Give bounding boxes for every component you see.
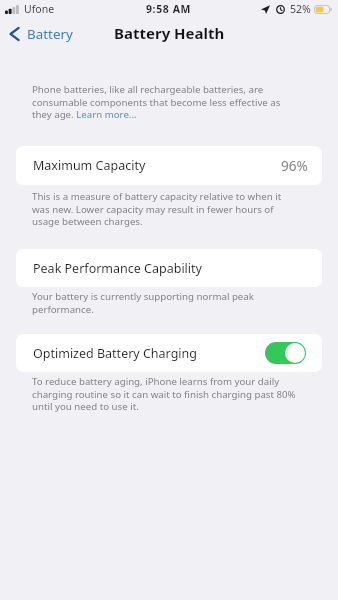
staticText: 9:58 AM [146, 2, 192, 16]
other: Alarm set [276, 5, 285, 14]
staticText: Peak Performance Capability [33, 260, 202, 277]
staticText: 96% [281, 156, 308, 175]
staticText: Battery [27, 25, 73, 43]
staticText: Ufone [24, 2, 55, 16]
other: Battery 52 percent, low power mode [314, 5, 332, 14]
staticText: Your battery is currently supporting nor… [32, 290, 298, 315]
staticText: Optimized Battery Charging [33, 345, 197, 362]
other: Location services active [261, 5, 270, 14]
button[interactable]: Optimized Battery Charging, on [265, 342, 306, 364]
staticText: 52% [290, 2, 311, 16]
button[interactable]: Peak Performance Capability [16, 249, 322, 287]
staticText: Phone batteries, like all rechargeable b… [32, 83, 298, 120]
staticText: Maximum Capacity [33, 157, 146, 174]
staticText: To reduce battery aging, iPhone learns f… [32, 375, 298, 412]
button[interactable]: Optimized Battery Charging [16, 334, 322, 372]
button[interactable]: Maximum Capacity [16, 146, 322, 185]
other: Cellular signal strength [5, 5, 20, 14]
staticText: This is a measure of battery capacity re… [32, 190, 298, 227]
button[interactable]: Back to Battery [0, 21, 79, 47]
staticText: Battery Health [114, 23, 225, 43]
